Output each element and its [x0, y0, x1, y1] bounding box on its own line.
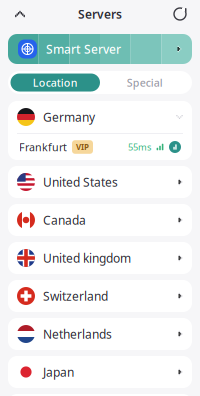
button[interactable]: Japan	[8, 356, 192, 388]
button[interactable]: United kingdom	[8, 242, 192, 274]
button[interactable]: Frankfurt	[8, 134, 192, 160]
staticText: Servers	[78, 6, 122, 22]
staticText: Frankfurt	[19, 140, 67, 154]
button[interactable]: Switzerland	[8, 280, 192, 312]
button[interactable]: Location	[10, 73, 100, 91]
staticText: United kingdom	[43, 250, 131, 266]
staticText: 55ms	[128, 141, 151, 153]
staticText: Switzerland	[43, 288, 108, 304]
button[interactable]: Back	[6, 2, 34, 26]
button[interactable]: Special	[100, 73, 189, 91]
staticText: Germany	[43, 109, 95, 125]
button[interactable]: Germany	[8, 101, 192, 133]
staticText: Netherlands	[43, 326, 112, 342]
button[interactable]: Smart Server	[8, 34, 192, 64]
staticText: Location	[33, 75, 78, 90]
staticText: United States	[43, 174, 118, 190]
staticText: Canada	[43, 212, 86, 228]
button[interactable]: Netherlands	[8, 318, 192, 350]
staticText: Special	[127, 75, 163, 90]
staticText: Smart Server	[46, 41, 121, 57]
button[interactable]: Canada	[8, 204, 192, 236]
button[interactable]: United States	[8, 166, 192, 198]
staticText: Japan	[43, 364, 74, 380]
button[interactable]: Refresh	[166, 2, 194, 26]
staticText: VIP	[76, 142, 89, 152]
